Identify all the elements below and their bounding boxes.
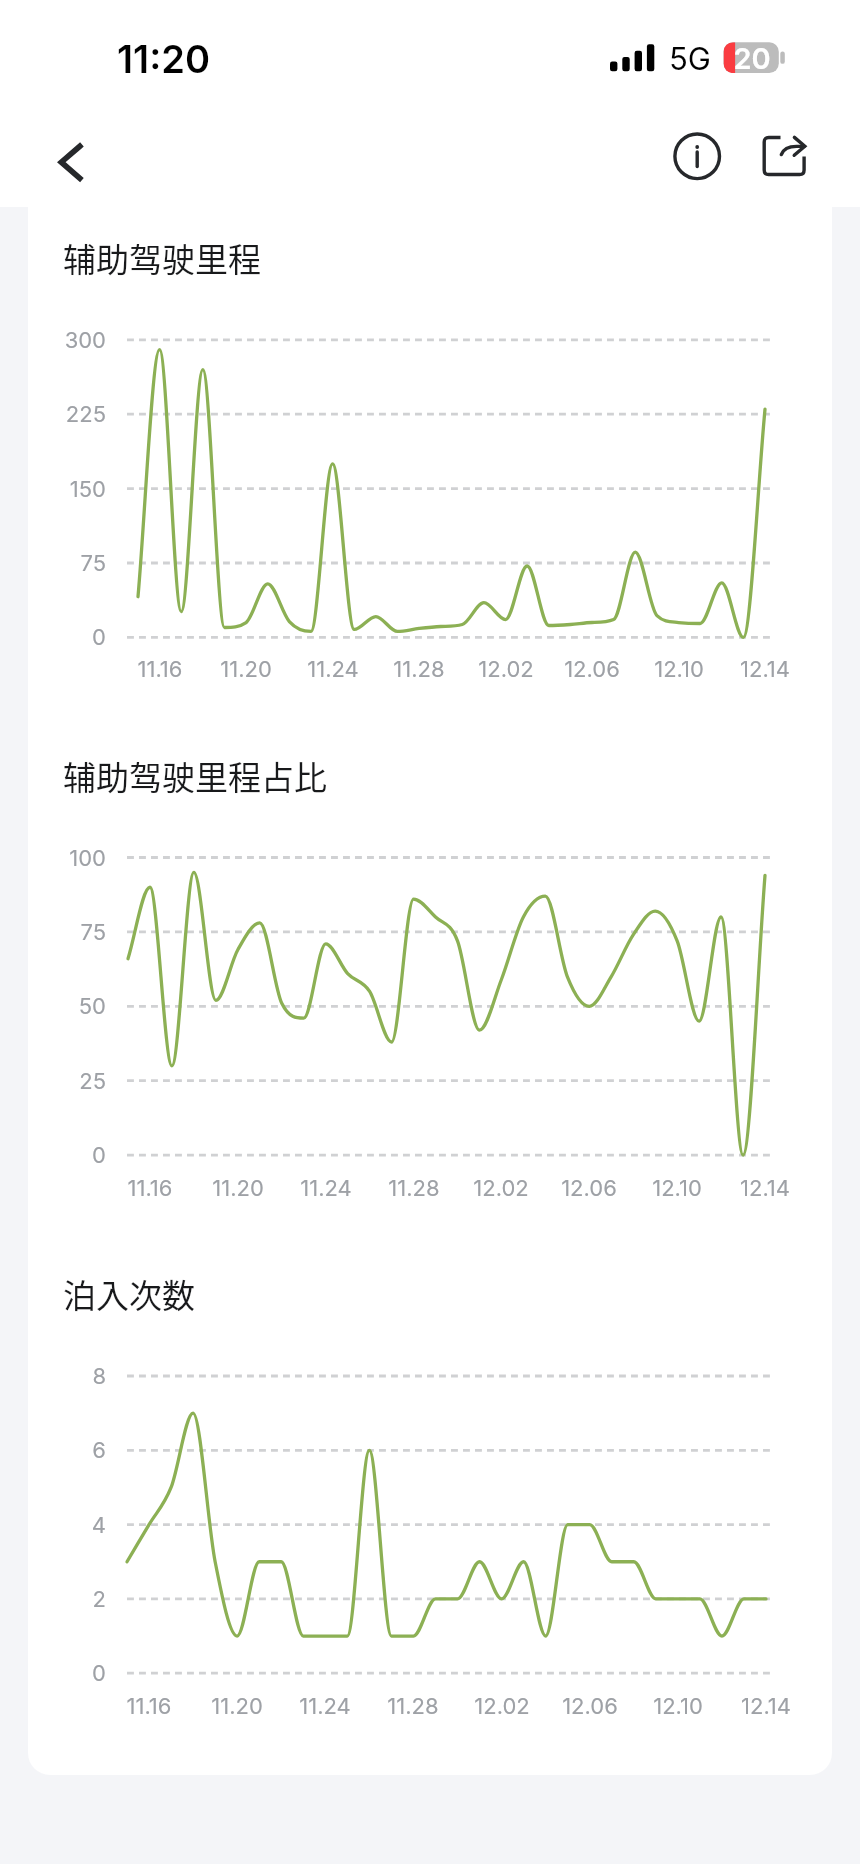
staticText: 11.28 (369, 656, 469, 683)
staticText: 12.10 (629, 656, 729, 683)
staticText: 4 (0, 1512, 106, 1539)
staticText: 11.16 (100, 1175, 200, 1202)
staticText: 11.16 (99, 1693, 199, 1720)
staticText: 11.20 (188, 1175, 288, 1202)
button[interactable]: Info (666, 125, 728, 187)
staticText: 5G (669, 40, 711, 78)
staticText: 300 (0, 327, 106, 354)
staticText: 辅助驾驶里程 (63, 234, 261, 282)
staticText: 2 (0, 1586, 106, 1613)
staticText: 20 (729, 41, 775, 76)
staticText: 辅助驾驶里程占比 (63, 752, 327, 800)
staticText: 11.24 (276, 1175, 376, 1202)
staticText: 12.10 (628, 1693, 728, 1720)
staticText: 150 (0, 476, 106, 503)
staticText: 50 (0, 993, 106, 1020)
staticText: 6 (0, 1437, 106, 1464)
staticText: 25 (0, 1068, 106, 1095)
staticText: 11:20 (117, 36, 210, 82)
staticText: 12.02 (456, 656, 556, 683)
staticText: 11.24 (283, 656, 383, 683)
staticText: 11.24 (275, 1693, 375, 1720)
staticText: 12.14 (715, 1175, 815, 1202)
staticText: 11.20 (187, 1693, 287, 1720)
staticText: 11.20 (196, 656, 296, 683)
staticText: 100 (0, 845, 106, 872)
staticText: 12.06 (539, 1175, 639, 1202)
staticText: 0 (0, 1142, 106, 1169)
button[interactable]: Back (34, 131, 96, 193)
staticText: 泊入次数 (63, 1270, 195, 1318)
staticText: 75 (0, 919, 106, 946)
staticText: 11.16 (110, 656, 210, 683)
staticText: 12.06 (542, 656, 642, 683)
staticText: 12.10 (627, 1175, 727, 1202)
staticText: 8 (0, 1363, 106, 1390)
staticText: 75 (0, 550, 106, 577)
staticText: 0 (0, 624, 106, 651)
staticText: 12.06 (540, 1693, 640, 1720)
staticText: 12.02 (451, 1175, 551, 1202)
staticText: 225 (0, 401, 106, 428)
staticText: 11.28 (363, 1693, 463, 1720)
staticText: 0 (0, 1660, 106, 1687)
staticText: 11.28 (364, 1175, 464, 1202)
button[interactable]: Share (756, 126, 818, 188)
staticText: 12.14 (716, 1693, 816, 1720)
staticText: 12.02 (452, 1693, 552, 1720)
staticText: 12.14 (715, 656, 815, 683)
